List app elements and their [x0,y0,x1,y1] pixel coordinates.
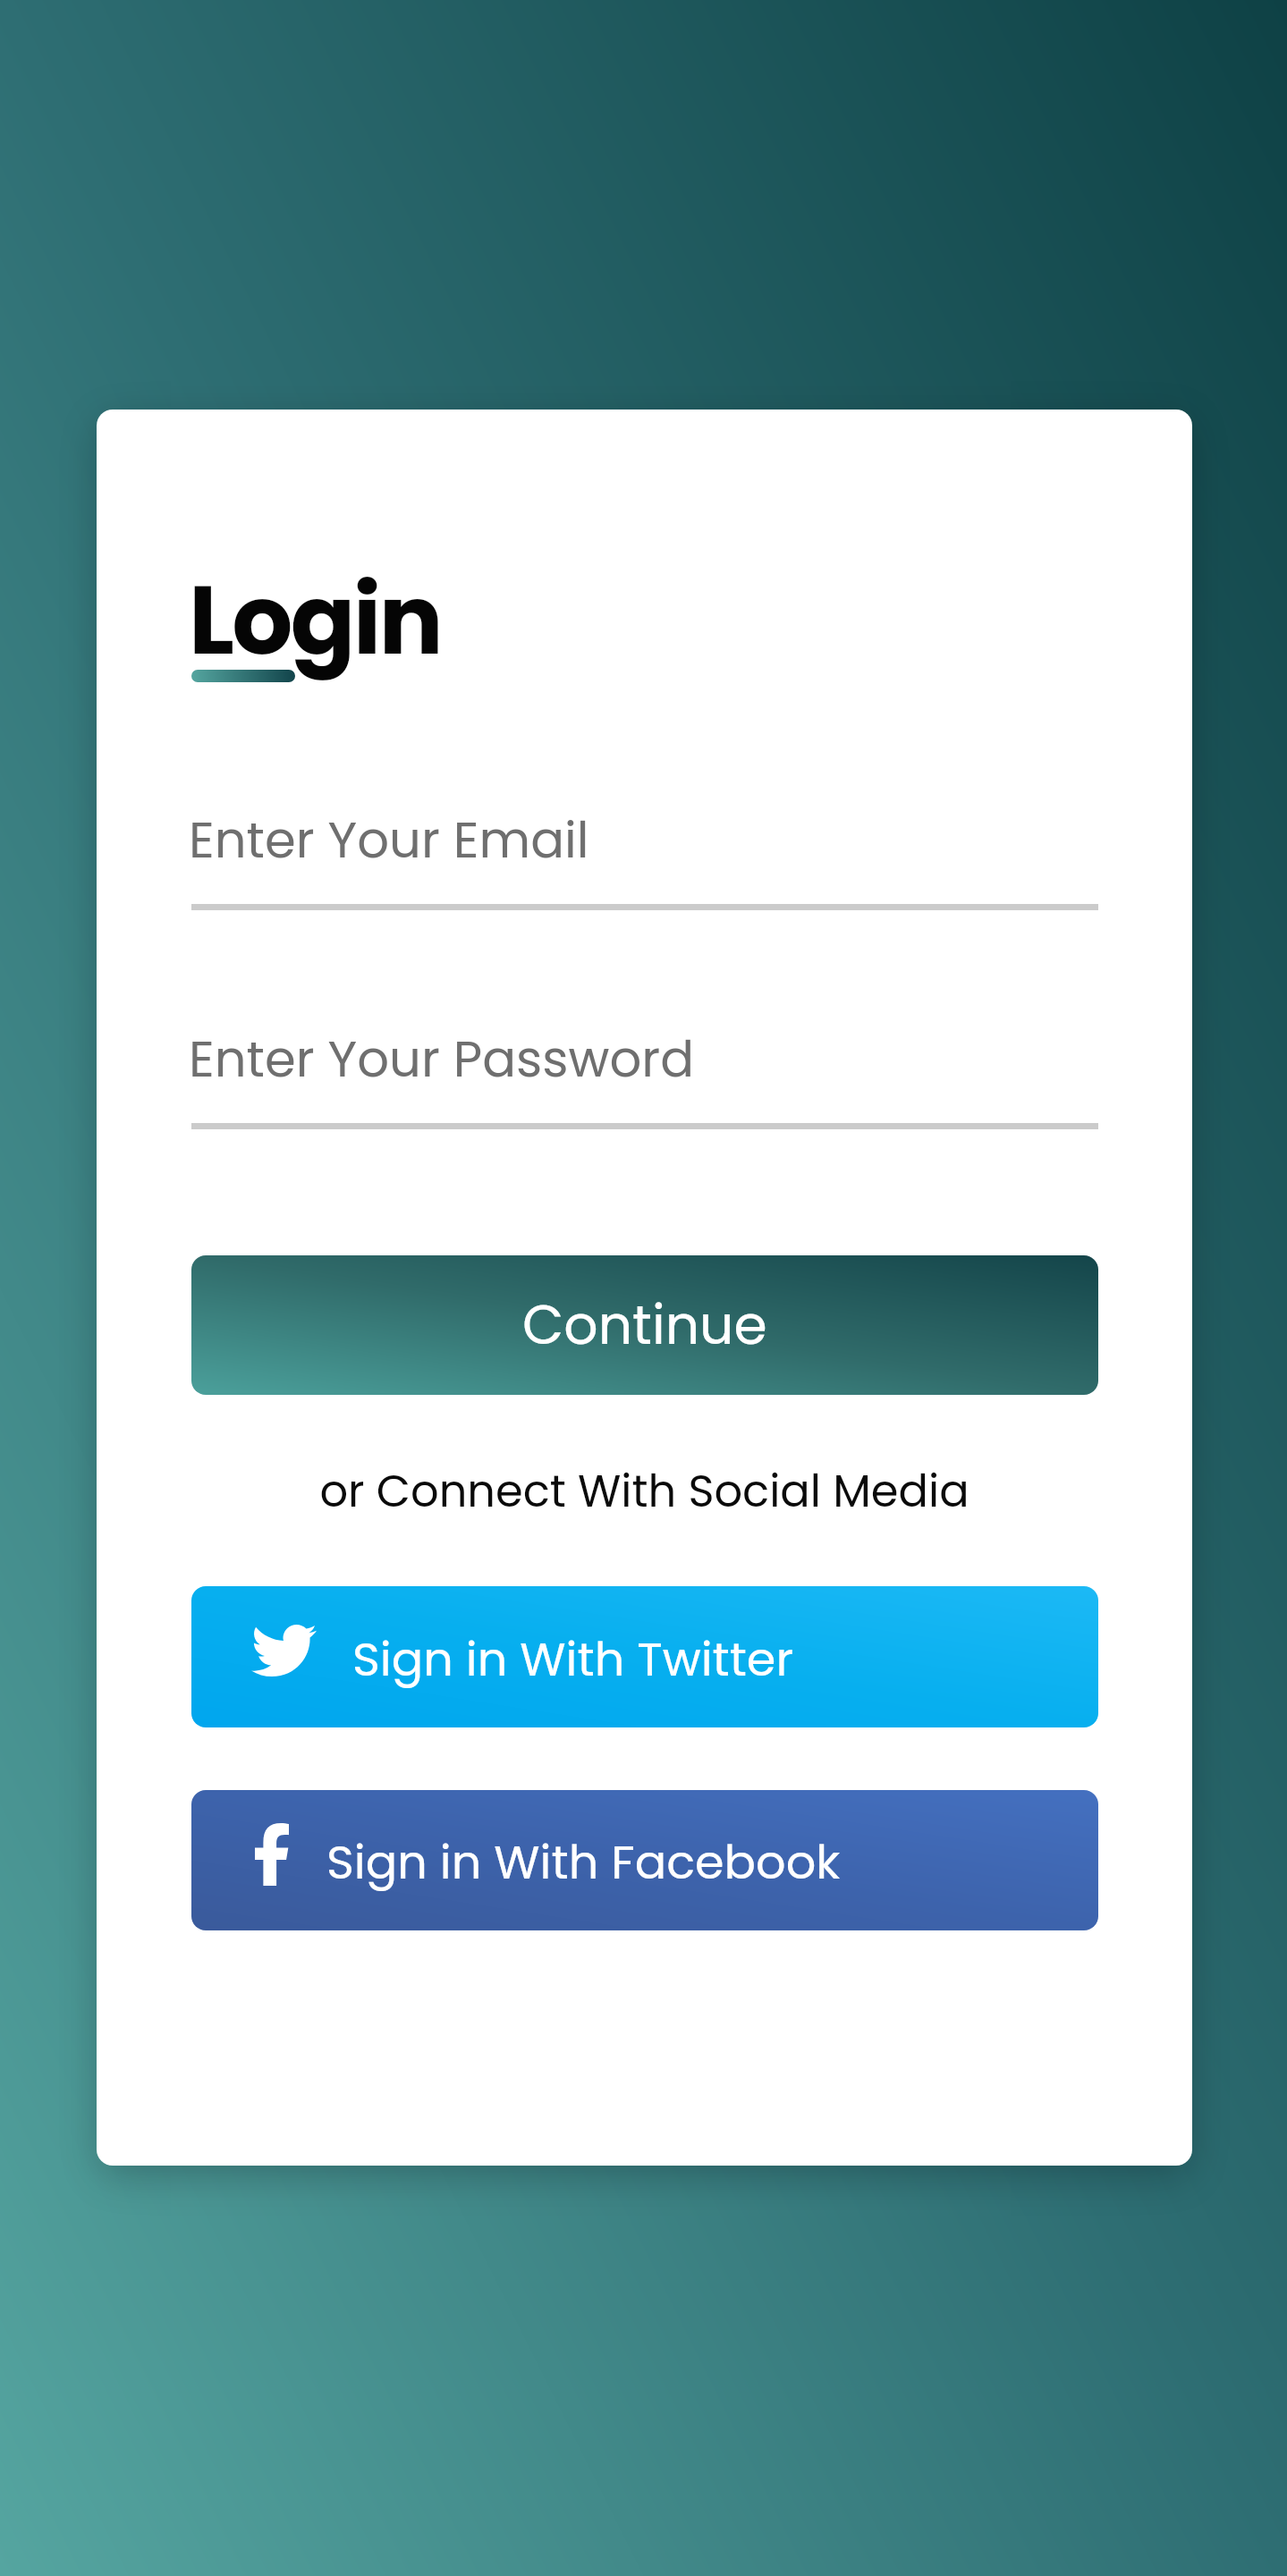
staticText: Enter Your Email [189,805,589,874]
other: Twitter [251,1625,317,1677]
staticText: Enter Your Password [189,1024,694,1094]
staticText: Login [189,553,442,688]
button[interactable]: Continue [191,1255,1098,1395]
button[interactable]: Enter Your Password [189,1024,1096,1117]
staticText: Sign in With Facebook [326,1829,841,1895]
other: Facebook [255,1823,289,1886]
staticText: Sign in With Twitter [352,1626,793,1692]
button[interactable]: Facebook [191,1790,1098,1930]
staticText: Continue [522,1288,767,1363]
button[interactable]: Twitter [191,1586,1098,1727]
button[interactable]: Enter Your Email [189,805,1096,898]
staticText: or Connect With Social Media [319,1460,969,1522]
